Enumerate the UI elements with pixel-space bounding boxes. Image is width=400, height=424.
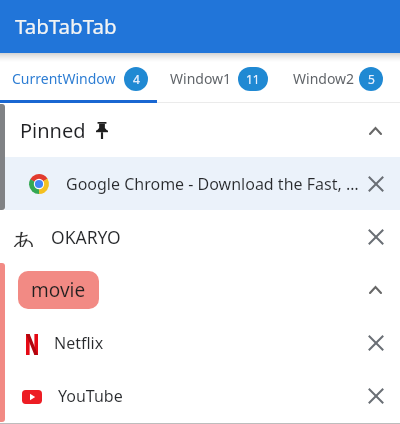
- button[interactable]: movie: [18, 271, 99, 309]
- button[interactable]: Netflix: [5, 316, 400, 369]
- button[interactable]: Google Chrome - Download the Fast, …: [5, 157, 400, 210]
- staticText: CurrentWindow: [12, 69, 116, 88]
- button[interactable]: Close tab: [360, 168, 392, 200]
- button[interactable]: YouTube: [5, 369, 400, 422]
- staticText: 4: [133, 71, 140, 87]
- button[interactable]: CurrentWindow: [0, 53, 157, 104]
- staticText: Pinned: [20, 117, 86, 144]
- staticText: 5: [368, 71, 375, 87]
- button[interactable]: Window1: [157, 53, 280, 104]
- staticText: TabTabTab: [15, 12, 117, 40]
- staticText: あ: [12, 227, 35, 247]
- staticText: OKARYO: [51, 225, 358, 249]
- staticText: movie: [31, 277, 86, 303]
- button[interactable]: Close tab: [360, 380, 392, 412]
- staticText: Netflix: [54, 332, 358, 354]
- staticText: Google Chrome - Download the Fast, …: [66, 173, 358, 195]
- button[interactable]: あ: [5, 210, 400, 263]
- button[interactable]: Collapse group: [359, 115, 391, 147]
- staticText: Window2: [293, 69, 355, 88]
- button[interactable]: Close tab: [360, 221, 392, 253]
- button[interactable]: Close tab: [360, 327, 392, 359]
- staticText: 11: [246, 71, 260, 87]
- button[interactable]: Window2: [280, 53, 400, 104]
- staticText: YouTube: [58, 385, 358, 407]
- staticText: Window1: [170, 69, 232, 88]
- button[interactable]: Collapse group: [359, 274, 391, 306]
